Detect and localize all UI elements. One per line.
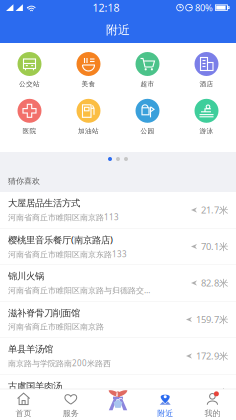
staticText: 172.9米 — [196, 350, 228, 362]
button[interactable]: 单县羊汤馆 — [0, 338, 236, 374]
staticText: 河南省商丘市睢阳区南京路与归德路交… — [8, 285, 150, 295]
staticText: 我的 — [204, 408, 220, 418]
staticText: 河南省商丘市睢阳区南京路113 — [8, 212, 119, 222]
staticText: 美食 — [81, 80, 95, 88]
staticText: 古虞国羊肉汤 — [8, 380, 62, 392]
staticText: 单县羊汤馆 — [8, 343, 53, 355]
staticText: 公交站 — [19, 80, 40, 88]
button[interactable]: 滋补脊骨刀削面馆 — [0, 301, 236, 338]
button[interactable]: 美食 — [59, 52, 118, 88]
staticText: 159.7米 — [196, 313, 228, 326]
button[interactable]: 公交站 — [0, 52, 59, 88]
staticText: 锦川火锅 — [8, 270, 44, 282]
staticText: 樱桃里音乐餐厅(南京路店) — [8, 233, 113, 246]
staticText: 70.1米 — [201, 240, 228, 253]
button[interactable]: 酒店 — [177, 52, 236, 88]
button[interactable]: 加油站 — [59, 99, 118, 135]
staticText: 南京路与学院路南200米路西 — [8, 358, 111, 368]
staticText: 大屋居品生活方式 — [8, 197, 80, 209]
button[interactable]: 超市 — [118, 52, 177, 88]
button[interactable]: 医院 — [0, 99, 59, 135]
staticText: 滋补脊骨刀削面馆 — [8, 307, 80, 319]
button[interactable]: 古虞国羊肉汤 — [0, 374, 236, 411]
staticText: 游泳 — [199, 127, 213, 135]
button[interactable]: 服务 — [47, 389, 94, 420]
staticText: 河南省商丘市睢阳区 — [8, 395, 80, 405]
staticText: 加油站 — [78, 127, 99, 135]
staticText: 服务 — [63, 408, 79, 418]
staticText: 公园 — [140, 127, 154, 135]
button[interactable]: 大屋居品生活方式 — [0, 192, 236, 228]
staticText: 80% — [195, 1, 213, 14]
staticText: 河南省商丘市睢阳区南京路 — [8, 322, 104, 332]
staticText: 82.8米 — [201, 277, 228, 289]
button[interactable]: 发布 — [94, 389, 142, 420]
staticText: 医院 — [22, 127, 36, 135]
staticText: 猜你喜欢 — [8, 176, 40, 186]
staticText: 附近 — [106, 23, 130, 37]
staticText: 超市 — [140, 80, 154, 88]
button[interactable]: 附近 — [142, 389, 189, 420]
button[interactable]: 锦川火锅 — [0, 265, 236, 301]
staticText: 酒店 — [199, 80, 213, 88]
staticText: 12:18 — [92, 0, 119, 15]
staticText: 附近 — [157, 408, 173, 418]
button[interactable]: 公园 — [118, 99, 177, 135]
staticText: 河南省商丘市睢阳区南京东路133 — [8, 249, 127, 259]
staticText: 178.6米 — [196, 386, 228, 399]
button[interactable]: 我的 — [189, 389, 236, 420]
button[interactable]: 樱桃里音乐餐厅(南京路店) — [0, 228, 236, 265]
button[interactable]: 首页 — [0, 389, 47, 420]
staticText: 21.7米 — [201, 204, 228, 216]
button[interactable]: 游泳 — [177, 99, 236, 135]
staticText: 首页 — [16, 408, 32, 418]
